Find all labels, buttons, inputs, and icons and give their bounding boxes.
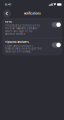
button[interactable]: Back bbox=[3, 9, 11, 17]
staticText: Sync bbox=[5, 20, 12, 23]
staticText: 9:41 bbox=[5, 3, 11, 6]
staticText: Learn about product features and how to … bbox=[5, 44, 42, 53]
staticText: This must be turned on to receive tasks … bbox=[5, 24, 40, 36]
button[interactable]: Tips and Features bbox=[2, 38, 62, 55]
staticText: Tips and Features bbox=[5, 40, 28, 44]
button[interactable]: Sync bbox=[2, 18, 62, 38]
staticText: Notifications bbox=[24, 12, 40, 15]
